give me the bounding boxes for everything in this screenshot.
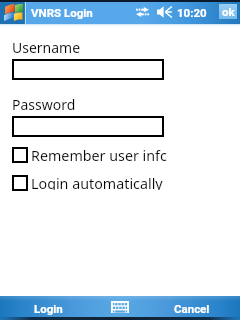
staticText: Login automatically — [31, 174, 163, 190]
other: Connectivity — [136, 6, 149, 18]
button[interactable]: Remember user infc — [12, 147, 167, 163]
staticText: ok — [222, 5, 235, 18]
staticText: 10:20 — [177, 6, 207, 19]
button[interactable]: ok — [219, 4, 237, 19]
button[interactable]: Login automatically — [12, 175, 163, 191]
button[interactable] — [12, 59, 164, 80]
staticText: Cancel — [174, 302, 210, 315]
button[interactable]: Start — [3, 4, 23, 21]
button[interactable]: Login — [0, 296, 97, 320]
button[interactable] — [12, 116, 164, 137]
staticText: Remember user infc — [31, 146, 167, 162]
staticText: VNRS Login — [31, 6, 93, 19]
button[interactable]: Keyboard — [97, 296, 143, 320]
button[interactable]: Cancel — [143, 296, 240, 320]
staticText: Password — [12, 95, 76, 114]
staticText: Username — [12, 38, 81, 57]
other: Volume — [157, 6, 172, 18]
staticText: Login — [34, 302, 63, 315]
